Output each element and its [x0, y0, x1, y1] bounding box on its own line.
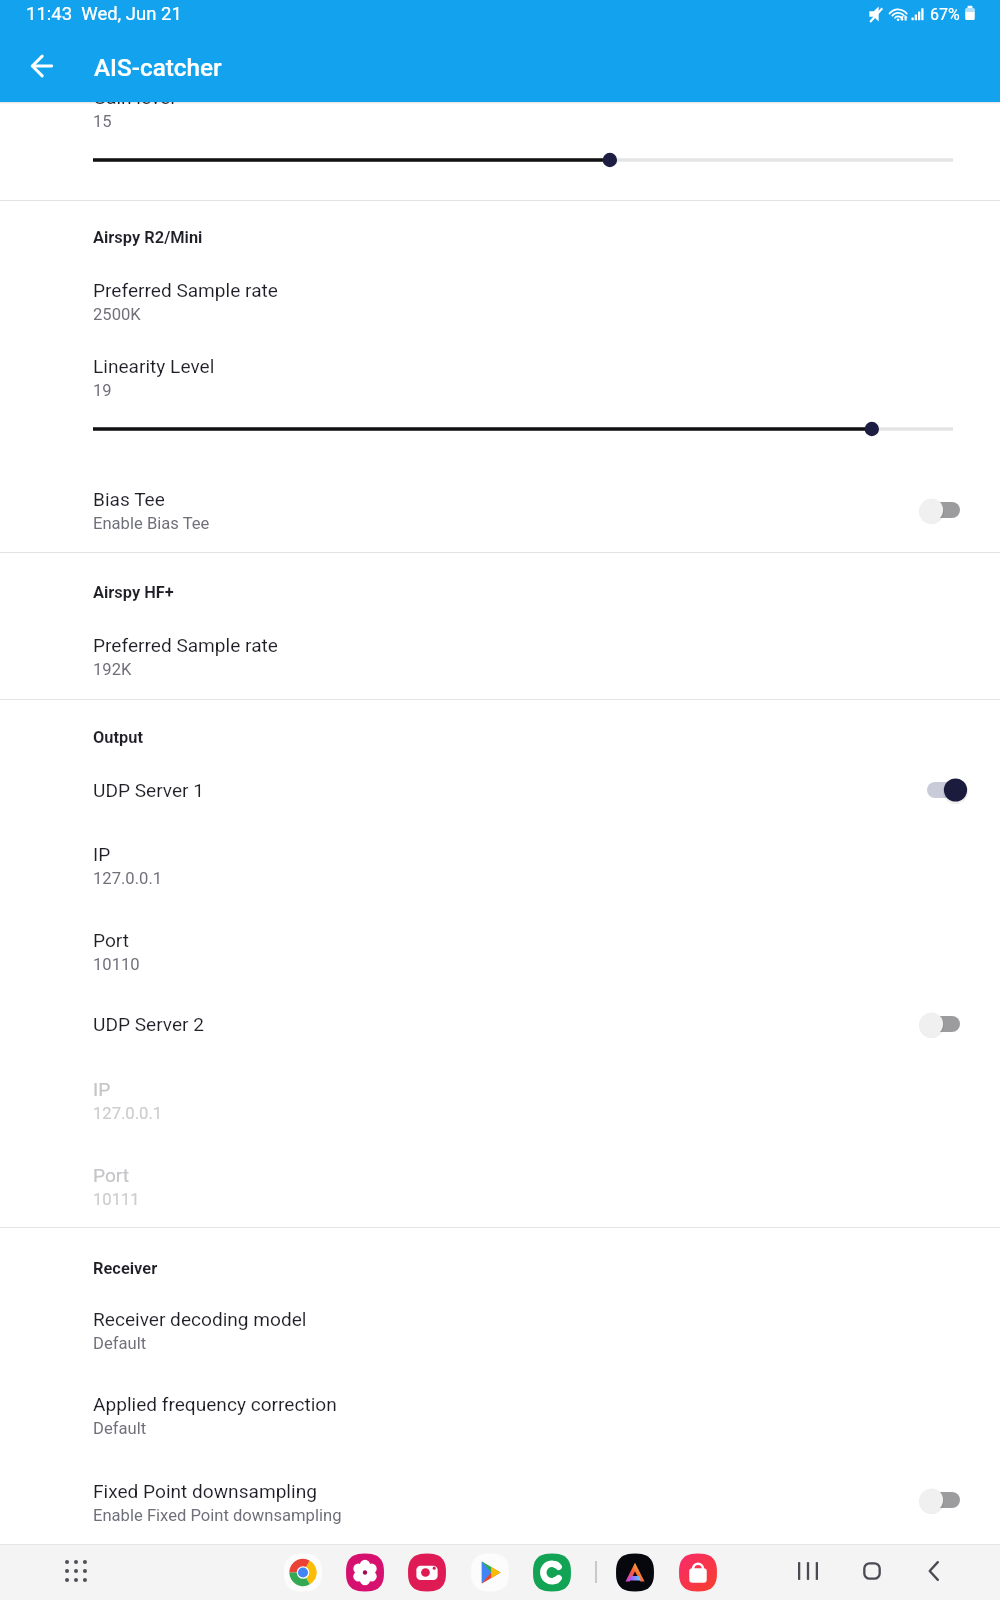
button[interactable]: [0, 337, 1000, 383]
button[interactable]: [0, 1060, 1000, 1128]
button[interactable]: Switch off: [895, 996, 979, 1052]
button[interactable]: [0, 470, 1000, 538]
staticText: 127.0.0.1: [93, 869, 163, 888]
staticText: Enable Bias Tee: [93, 514, 210, 533]
button[interactable]: [0, 1375, 1000, 1443]
staticText: Port: [93, 1164, 129, 1186]
staticText: Enable Fixed Point downsampling: [93, 1506, 342, 1525]
button[interactable]: [0, 995, 1000, 1039]
button[interactable]: Recents: [778, 1546, 838, 1596]
button[interactable]: [0, 825, 1000, 893]
staticText: 127.0.0.1: [93, 1104, 163, 1123]
button[interactable]: [0, 911, 1000, 979]
staticText: Linearity Level: [93, 355, 215, 377]
button[interactable]: Switch on: [895, 762, 979, 818]
button[interactable]: Home: [842, 1546, 902, 1596]
button[interactable]: Back: [904, 1546, 964, 1596]
staticText: 192K: [93, 660, 132, 679]
staticText: Preferred Sample rate: [93, 634, 278, 656]
staticText: 10110: [93, 955, 140, 974]
staticText: UDP Server 1: [93, 779, 204, 801]
staticText: Port: [93, 929, 129, 951]
button[interactable]: [0, 1290, 1000, 1358]
button[interactable]: Assistant: [609, 1545, 661, 1597]
button[interactable]: Slider: [0, 405, 1000, 453]
staticText: AIS-catcher: [94, 53, 222, 81]
staticText: Default: [93, 1419, 147, 1438]
staticText: IP: [93, 843, 111, 865]
button[interactable]: Apps: [50, 1545, 102, 1597]
staticText: 15: [93, 112, 112, 131]
staticText: Bias Tee: [93, 488, 165, 510]
button[interactable]: Phone: [526, 1545, 578, 1597]
staticText: Fixed Point downsampling: [93, 1480, 317, 1502]
button[interactable]: Switch off: [895, 1472, 979, 1528]
button[interactable]: Gallery: [339, 1545, 391, 1597]
button[interactable]: Chrome: [277, 1545, 329, 1597]
button[interactable]: Play Store: [464, 1545, 516, 1597]
staticText: 19: [93, 381, 112, 400]
button[interactable]: [0, 616, 1000, 684]
button[interactable]: Slider: [0, 136, 1000, 184]
staticText: Output: [93, 728, 143, 747]
staticText: 67%: [930, 5, 960, 24]
button[interactable]: [0, 1146, 1000, 1214]
button[interactable]: Galaxy Store: [672, 1545, 724, 1597]
staticText: 10111: [93, 1190, 140, 1209]
staticText: Receiver decoding model: [93, 1308, 307, 1330]
staticText: Applied frequency correction: [93, 1393, 337, 1415]
staticText: UDP Server 2: [93, 1013, 204, 1035]
staticText: Gain level: [93, 86, 175, 108]
button[interactable]: Switch off: [895, 482, 979, 538]
staticText: Airspy HF+: [93, 583, 174, 602]
button[interactable]: [0, 1462, 1000, 1530]
button[interactable]: [0, 761, 1000, 805]
staticText: Airspy R2/Mini: [93, 228, 203, 247]
button[interactable]: [0, 261, 1000, 329]
staticText: IP: [93, 1078, 111, 1100]
staticText: Default: [93, 1334, 147, 1353]
staticText: Preferred Sample rate: [93, 279, 278, 301]
staticText: 11:43 Wed, Jun 21: [26, 3, 182, 25]
button[interactable]: Navigate up: [10, 34, 74, 98]
staticText: 2500K: [93, 305, 141, 324]
button[interactable]: Camera: [401, 1545, 453, 1597]
staticText: Receiver: [93, 1259, 158, 1278]
